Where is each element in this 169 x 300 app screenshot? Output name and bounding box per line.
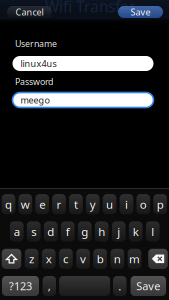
staticText: ,	[48, 278, 51, 294]
button[interactable]: l	[146, 221, 159, 241]
staticText: h	[98, 224, 105, 239]
staticText: k	[133, 224, 139, 239]
button[interactable]: i	[120, 194, 133, 214]
button[interactable]: meego	[11, 91, 154, 108]
staticText: linux4us	[20, 57, 56, 70]
button[interactable]: d	[44, 221, 57, 241]
button[interactable]: k	[129, 221, 142, 241]
button[interactable]: w	[19, 194, 32, 214]
button[interactable]: Cancel	[7, 6, 52, 18]
button[interactable]: z	[25, 249, 38, 269]
staticText: j	[117, 224, 120, 239]
button[interactable]: ,	[43, 276, 56, 296]
button[interactable]: b	[93, 249, 107, 269]
staticText: q	[5, 196, 12, 212]
button[interactable]: linux4us	[11, 55, 154, 72]
button[interactable]: Save	[118, 6, 163, 18]
button[interactable]: g	[78, 221, 91, 241]
button[interactable]: v	[76, 249, 90, 269]
button[interactable]: ?123	[2, 276, 39, 296]
button[interactable]: Save	[131, 276, 166, 296]
staticText: i	[125, 196, 128, 212]
staticText: meego	[20, 94, 49, 106]
staticText: .	[118, 278, 121, 294]
staticText: r	[57, 196, 62, 212]
button[interactable]: .	[113, 276, 126, 296]
button[interactable]: s	[27, 221, 40, 241]
staticText: e	[39, 196, 45, 212]
staticText: u	[106, 196, 113, 212]
button[interactable]: y	[86, 194, 100, 214]
button[interactable]: j	[112, 221, 125, 241]
button[interactable]: Shift	[2, 249, 21, 269]
button[interactable]: p	[153, 194, 167, 214]
button[interactable]: x	[42, 249, 56, 269]
button[interactable]: q	[2, 194, 15, 214]
staticText: y	[90, 196, 96, 212]
staticText: b	[97, 251, 104, 267]
button[interactable]: t	[69, 194, 83, 214]
button[interactable]: c	[59, 249, 73, 269]
button[interactable]: Delete	[148, 249, 168, 269]
button[interactable]: n	[110, 249, 124, 269]
staticText: ?123	[9, 279, 32, 293]
staticText: Cancel	[15, 6, 43, 18]
staticText: t	[74, 196, 78, 212]
staticText: w	[21, 196, 30, 212]
staticText: f	[66, 224, 70, 239]
button[interactable]: e	[35, 194, 49, 214]
staticText: Username	[15, 37, 57, 49]
staticText: o	[140, 196, 147, 212]
staticText: a	[14, 224, 20, 239]
staticText: m	[129, 251, 140, 267]
button[interactable]: r	[52, 194, 66, 214]
button[interactable]: Space	[59, 276, 110, 296]
button[interactable]: m	[128, 249, 141, 269]
staticText: Save	[130, 6, 150, 18]
button[interactable]: u	[103, 194, 116, 214]
staticText: d	[47, 224, 54, 239]
staticText: Wifi Transfer	[45, 0, 135, 17]
staticText: l	[151, 224, 154, 239]
staticText: Save	[136, 279, 160, 293]
staticText: s	[31, 224, 36, 239]
staticText: v	[80, 251, 86, 267]
staticText: z	[29, 251, 34, 267]
staticText: c	[63, 251, 69, 267]
staticText: x	[46, 251, 52, 267]
staticText: Password	[15, 75, 53, 87]
button[interactable]: h	[95, 221, 108, 241]
button[interactable]: a	[10, 221, 23, 241]
button[interactable]: o	[136, 194, 150, 214]
button[interactable]: f	[61, 221, 74, 241]
staticText: n	[114, 251, 121, 267]
staticText: p	[157, 196, 164, 212]
staticText: g	[81, 224, 88, 239]
